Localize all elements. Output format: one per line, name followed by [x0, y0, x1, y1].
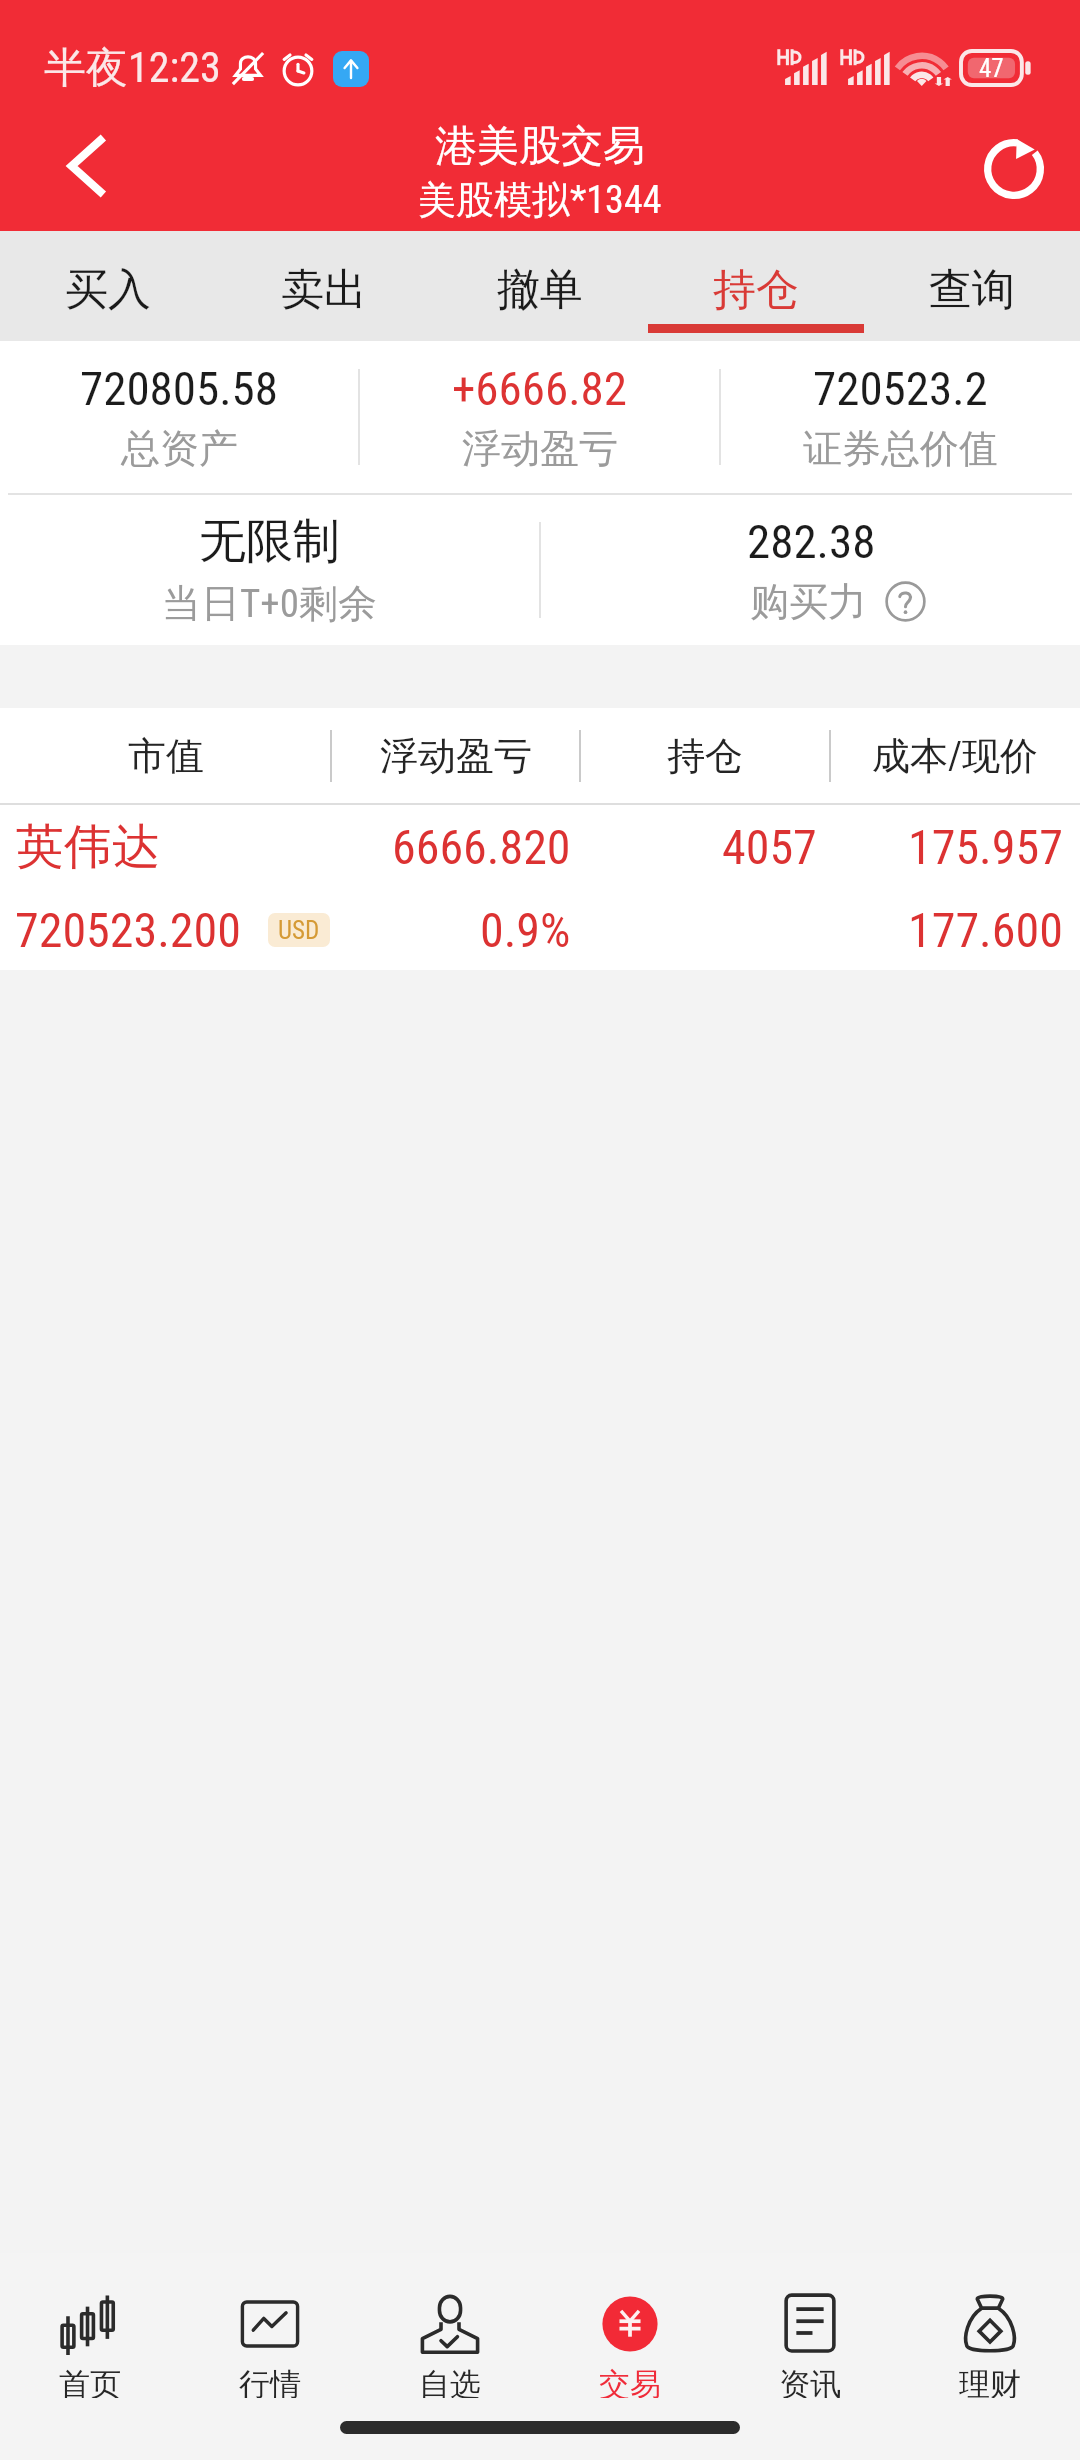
staticText: 行情 [239, 2365, 301, 2398]
staticText: 市值 [128, 732, 204, 780]
staticText: 持仓 [667, 732, 743, 780]
button[interactable]: 英伟达 [0, 803, 1080, 970]
staticText: 交易 [599, 2365, 661, 2398]
button[interactable]: 持仓 [648, 231, 864, 341]
staticText: 首页 [59, 2365, 121, 2398]
button[interactable]: 查询 [864, 231, 1080, 341]
staticText: 查询 [929, 263, 1015, 317]
button[interactable]: Buying power help [885, 581, 926, 622]
staticText: 720523.200 [15, 902, 241, 958]
staticText: 美股模拟*1344 [418, 176, 662, 224]
staticText: 证券总价值 [803, 424, 998, 473]
button[interactable]: 撤单 [432, 231, 648, 341]
staticText: 成本/现价 [872, 732, 1039, 780]
staticText: 0.9% [480, 902, 571, 958]
staticText: 浮动盈亏 [380, 732, 532, 780]
staticText: 持仓 [713, 263, 799, 317]
button[interactable]: 卖出 [216, 231, 432, 341]
button[interactable]: Back [0, 112, 172, 231]
staticText: 浮动盈亏 [462, 424, 618, 473]
staticText: 当日T+0剩余 [162, 579, 377, 628]
staticText: 175.957 [908, 819, 1063, 875]
staticText: 购买力 [750, 577, 867, 626]
button[interactable]: 首页 [0, 2293, 180, 2398]
staticText: 无限制 [199, 512, 340, 571]
staticText: 720523.2 [813, 361, 988, 416]
staticText: 47 [979, 54, 1004, 83]
staticText: 卖出 [281, 263, 367, 317]
staticText: 买入 [65, 263, 151, 317]
staticText: USD [278, 916, 320, 945]
staticText: 720805.58 [80, 361, 279, 416]
staticText: 半夜12:23 [44, 42, 221, 95]
staticText: 6666.820 [392, 819, 571, 875]
button[interactable]: 自选 [360, 2293, 540, 2398]
staticText: 177.600 [908, 902, 1063, 958]
button[interactable]: 交易 [540, 2293, 720, 2398]
staticText: +6666.82 [452, 361, 627, 416]
button[interactable]: 资讯 [720, 2293, 900, 2398]
staticText: 撤单 [497, 263, 583, 317]
staticText: 4057 [722, 819, 817, 875]
button[interactable]: 行情 [180, 2293, 360, 2398]
button[interactable]: 买入 [0, 231, 216, 341]
staticText: 总资产 [121, 424, 238, 473]
staticText: 资讯 [779, 2365, 841, 2398]
staticText: 282.38 [747, 514, 876, 569]
button[interactable]: 理财 [900, 2293, 1080, 2398]
button[interactable]: Refresh [948, 112, 1080, 231]
staticText: 港美股交易 [435, 120, 645, 173]
staticText: 理财 [959, 2365, 1021, 2398]
staticText: 自选 [419, 2365, 481, 2398]
staticText: 英伟达 [16, 817, 160, 877]
